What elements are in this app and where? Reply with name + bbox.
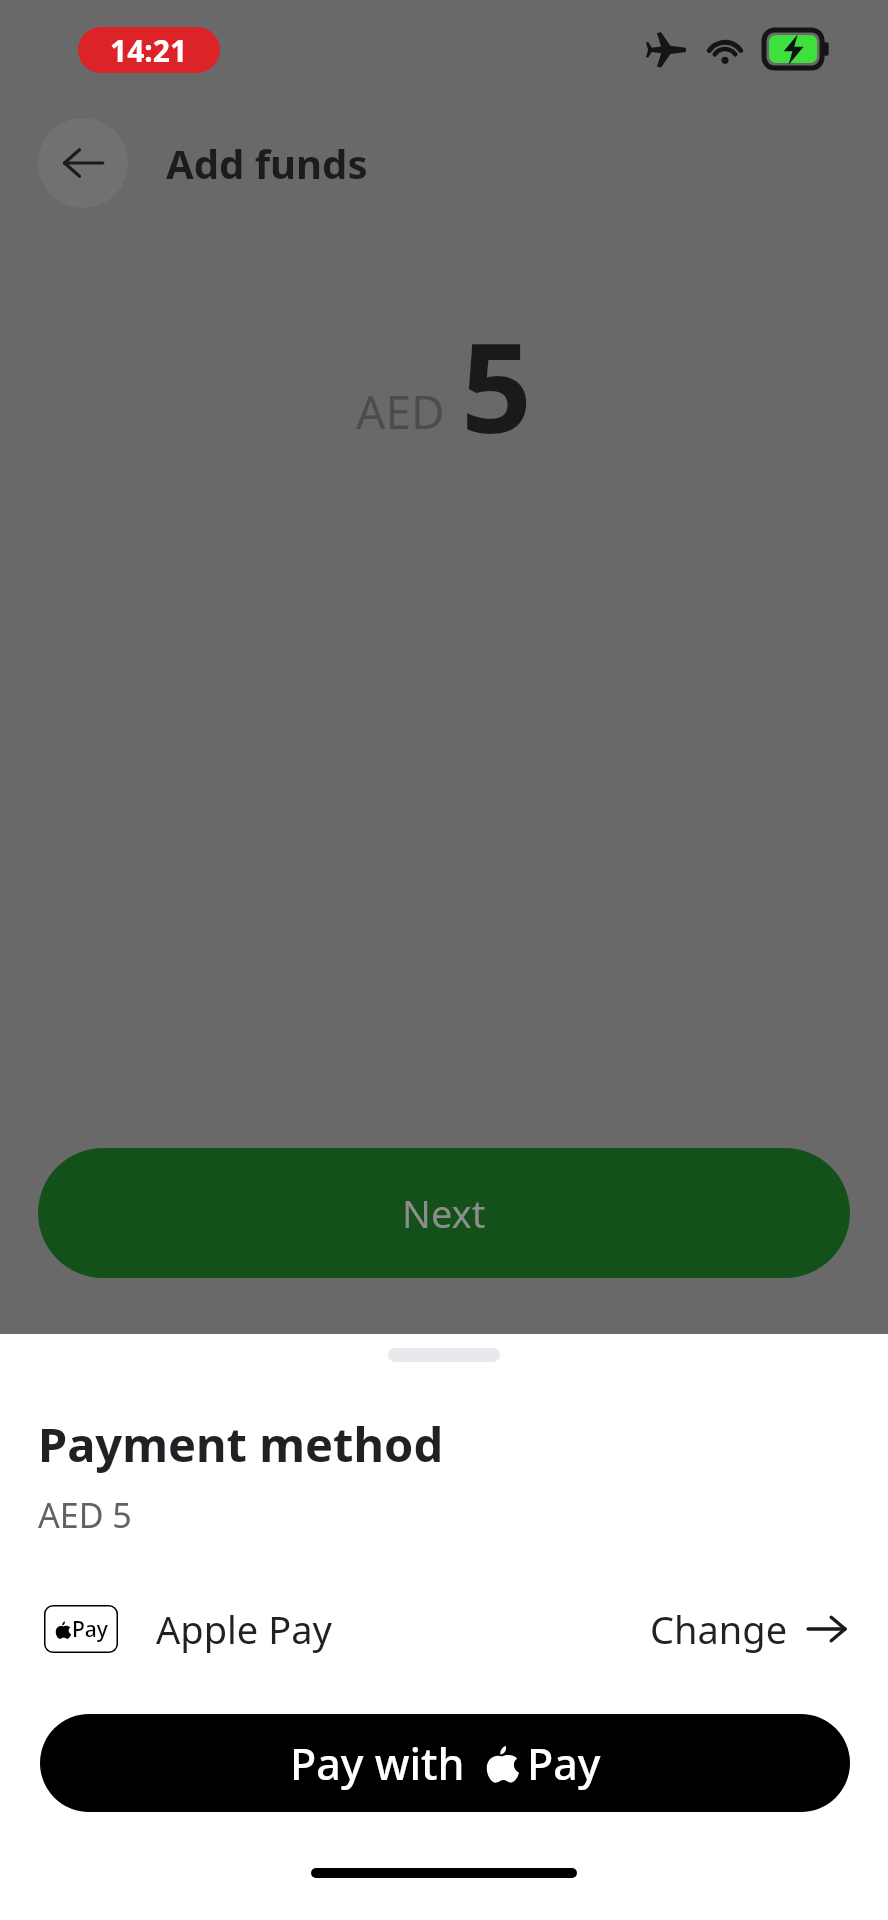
button[interactable]: Pay	[44, 1598, 848, 1660]
staticText: Pay	[527, 1734, 601, 1793]
staticText: Change	[650, 1603, 788, 1655]
staticText: Next	[402, 1187, 486, 1239]
staticText: 5	[461, 300, 532, 469]
staticText: AED 5	[38, 1492, 132, 1538]
staticText: AED	[356, 380, 445, 443]
staticText: Payment method	[38, 1412, 444, 1476]
button[interactable]: Next	[38, 1148, 850, 1278]
staticText: 14:21	[110, 30, 188, 71]
button[interactable]: Back	[38, 118, 128, 208]
staticText: Pay	[72, 1615, 108, 1644]
staticText: Apple Pay	[156, 1603, 332, 1655]
button[interactable]: Pay with	[40, 1714, 850, 1812]
staticText: Add funds	[166, 136, 368, 190]
staticText: Pay with	[290, 1734, 465, 1793]
